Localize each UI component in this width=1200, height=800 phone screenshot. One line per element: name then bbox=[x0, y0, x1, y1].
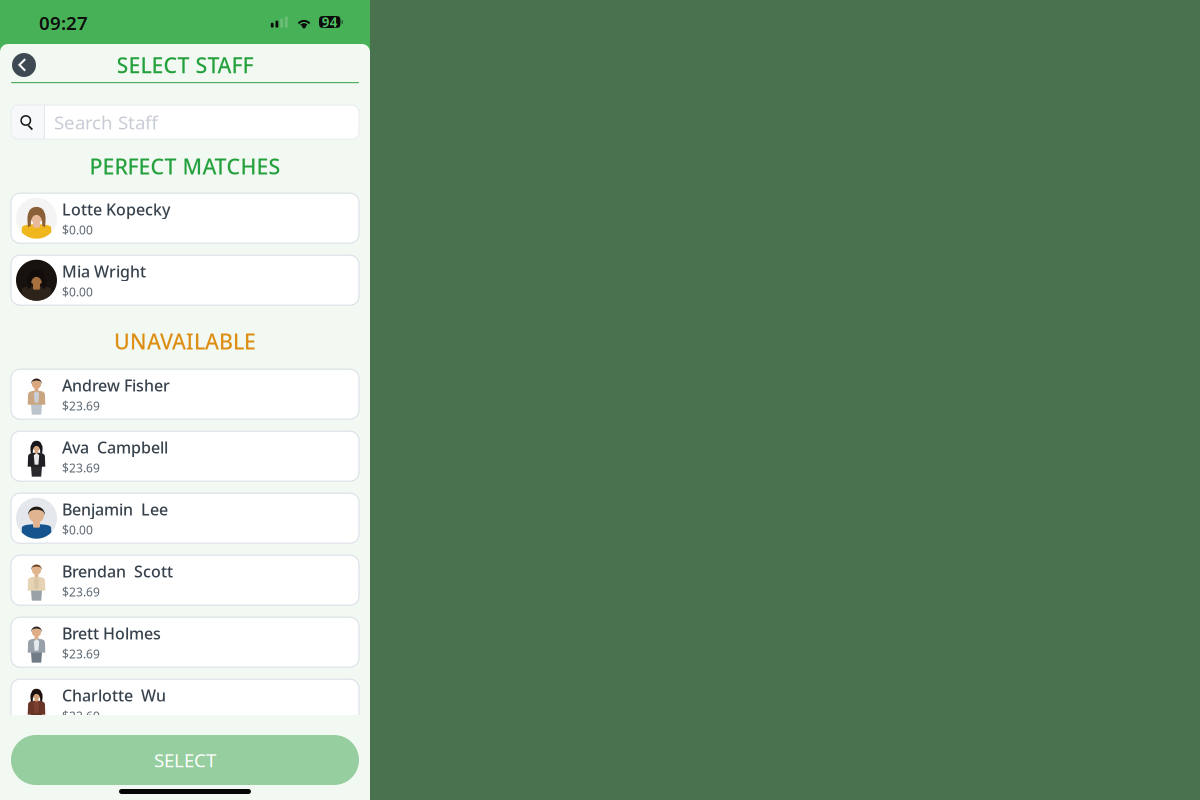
staticText: $23.69 bbox=[62, 708, 100, 724]
staticText: Ava Campbell bbox=[62, 437, 168, 458]
staticText: $23.69 bbox=[62, 398, 100, 414]
staticText: SELECT STAFF bbox=[116, 51, 253, 79]
staticText: Brett Holmes bbox=[62, 623, 161, 644]
staticText: $0.00 bbox=[62, 522, 93, 538]
button[interactable]: Back bbox=[7, 48, 41, 82]
staticText: Charlotte Wu bbox=[62, 685, 166, 706]
staticText: $23.69 bbox=[62, 584, 100, 600]
button[interactable]: Andrew Fisher bbox=[11, 369, 359, 419]
staticText: 09:27 bbox=[39, 10, 88, 35]
button[interactable]: SELECT bbox=[11, 735, 359, 785]
button[interactable]: Benjamin Lee bbox=[11, 493, 359, 543]
staticText: $23.69 bbox=[62, 460, 100, 476]
button[interactable]: Brendan Scott bbox=[11, 555, 359, 605]
staticText: $0.00 bbox=[62, 284, 93, 300]
button[interactable]: Charlotte Wu bbox=[11, 679, 359, 729]
staticText: PERFECT MATCHES bbox=[89, 152, 280, 180]
staticText: Brendan Scott bbox=[62, 561, 173, 582]
button[interactable]: Mia Wright bbox=[11, 255, 359, 305]
staticText: Andrew Fisher bbox=[62, 375, 170, 396]
staticText: Search Staff bbox=[54, 110, 158, 135]
staticText: SELECT bbox=[154, 748, 216, 772]
button[interactable]: Ava Campbell bbox=[11, 431, 359, 481]
staticText: Benjamin Lee bbox=[62, 499, 168, 520]
button[interactable]: Search Staff bbox=[11, 105, 359, 139]
staticText: UNAVAILABLE bbox=[114, 327, 256, 355]
staticText: 94 bbox=[322, 13, 338, 31]
staticText: Lotte Kopecky bbox=[62, 199, 170, 220]
button[interactable]: Lotte Kopecky bbox=[11, 193, 359, 243]
staticText: Mia Wright bbox=[62, 261, 146, 282]
staticText: $23.69 bbox=[62, 646, 100, 662]
staticText: $0.00 bbox=[62, 222, 93, 238]
button[interactable]: Brett Holmes bbox=[11, 617, 359, 667]
